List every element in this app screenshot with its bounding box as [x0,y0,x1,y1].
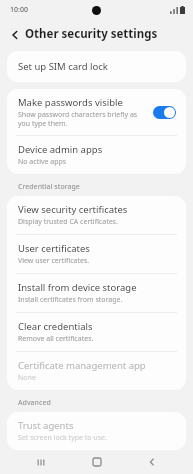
button[interactable]: Trust agents [7,412,186,450]
button[interactable]: Recent apps [26,450,56,474]
button[interactable]: Install from device storage [7,274,186,312]
button[interactable]: User certificates [7,235,186,273]
button[interactable]: Make passwords visible [7,89,186,135]
staticText: Display trusted CA certificates. [18,217,118,227]
button[interactable]: Back [137,450,167,474]
button[interactable]: Make passwords visible [153,106,176,119]
staticText: Trust agents [18,419,74,432]
staticText: Advanced [18,398,51,408]
staticText: 10:00 [10,5,28,15]
staticText: Install certificates from storage. [18,295,123,305]
staticText: Clear credentials [18,320,93,333]
staticText: Other security settings [25,26,158,42]
staticText: Show password characters briefly as you … [18,110,147,128]
staticText: View security certificates [18,203,128,216]
staticText: Make passwords visible [18,96,123,109]
button[interactable]: View security certificates [7,196,186,234]
button[interactable]: Set up SIM card lock [7,51,186,82]
staticText: Set up SIM card lock [18,60,108,73]
button[interactable]: Certificate management app [7,352,186,390]
staticText: Certificate management app [18,359,146,372]
staticText: User certificates [18,242,90,255]
staticText: Install from device storage [18,281,137,294]
staticText: No active apps [18,157,67,167]
staticText: Remove all certificates. [18,334,94,344]
button[interactable]: Clear credentials [7,313,186,351]
button[interactable]: Home [82,450,112,474]
staticText: Credential storage [18,182,80,192]
button[interactable]: Device admin apps [7,136,186,174]
staticText: Set screen lock type to use. [18,433,107,443]
staticText: Device admin apps [18,143,103,156]
staticText: View user certificates. [18,256,90,266]
button[interactable]: Back [6,26,23,43]
staticText: None [18,373,36,383]
